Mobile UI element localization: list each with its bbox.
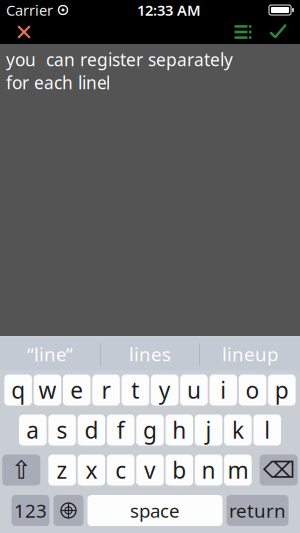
button[interactable]: lines bbox=[101, 338, 199, 370]
staticText: space bbox=[130, 498, 180, 523]
button[interactable]: t bbox=[122, 374, 149, 405]
button[interactable]: k bbox=[224, 414, 252, 445]
staticText: i bbox=[220, 375, 226, 405]
button[interactable]: o bbox=[239, 374, 266, 405]
staticText: 123 bbox=[14, 498, 47, 523]
button[interactable]: return bbox=[226, 495, 288, 526]
staticText: u bbox=[187, 375, 201, 405]
button[interactable]: Done bbox=[260, 20, 296, 44]
button[interactable]: i bbox=[209, 374, 237, 405]
button[interactable]: f bbox=[107, 414, 134, 445]
staticText: y bbox=[159, 375, 171, 405]
button[interactable]: l bbox=[253, 414, 281, 445]
staticText: ⌫ bbox=[263, 457, 295, 483]
button[interactable]: 123 bbox=[11, 495, 49, 526]
staticText: lineup bbox=[222, 342, 278, 366]
button[interactable]: j bbox=[195, 414, 222, 445]
button[interactable]: m bbox=[224, 454, 252, 485]
button[interactable]: v bbox=[136, 454, 164, 485]
staticText: c bbox=[115, 455, 126, 485]
button[interactable]: g bbox=[136, 414, 164, 445]
button[interactable]: Next keyboard bbox=[53, 495, 83, 526]
button[interactable]: w bbox=[34, 374, 61, 405]
button[interactable]: c bbox=[107, 454, 134, 485]
button[interactable]: e bbox=[63, 374, 90, 405]
button[interactable]: z bbox=[48, 454, 76, 485]
staticText: b bbox=[172, 455, 186, 485]
staticText: q bbox=[11, 375, 25, 405]
button[interactable]: “line” bbox=[0, 338, 100, 370]
staticText: 12:33 AM bbox=[137, 0, 201, 20]
staticText: n bbox=[202, 455, 216, 485]
staticText: ⇧ bbox=[11, 456, 32, 484]
button[interactable]: s bbox=[48, 414, 76, 445]
button[interactable]: u bbox=[180, 374, 208, 405]
button[interactable]: x bbox=[78, 454, 105, 485]
staticText: w bbox=[38, 375, 56, 405]
staticText: “line” bbox=[27, 342, 73, 366]
staticText: v bbox=[144, 455, 156, 485]
button[interactable]: Shift bbox=[2, 454, 40, 485]
staticText: lines bbox=[129, 342, 171, 366]
staticText: Carrier bbox=[6, 0, 53, 20]
staticText: d bbox=[84, 415, 98, 445]
button[interactable]: d bbox=[78, 414, 105, 445]
staticText: j bbox=[206, 415, 212, 445]
button[interactable]: p bbox=[268, 374, 296, 405]
button[interactable]: r bbox=[92, 374, 120, 405]
staticText: for each line bbox=[6, 71, 107, 94]
staticText: o bbox=[246, 375, 260, 405]
staticText: h bbox=[172, 415, 186, 445]
button[interactable]: b bbox=[166, 454, 193, 485]
staticText: g bbox=[143, 415, 157, 445]
button[interactable]: List options bbox=[226, 20, 260, 44]
staticText: l bbox=[264, 415, 270, 445]
staticText: k bbox=[232, 415, 244, 445]
staticText: m bbox=[227, 455, 248, 485]
staticText: you can register separately bbox=[6, 48, 233, 71]
staticText: t bbox=[131, 375, 139, 405]
staticText: e bbox=[70, 375, 83, 405]
button[interactable]: n bbox=[195, 454, 222, 485]
staticText: r bbox=[102, 375, 111, 405]
button[interactable]: a bbox=[19, 414, 47, 445]
staticText: s bbox=[57, 415, 68, 445]
button[interactable]: Delete bbox=[260, 454, 298, 485]
button[interactable]: q bbox=[4, 374, 32, 405]
button[interactable]: y bbox=[151, 374, 178, 405]
staticText: f bbox=[117, 415, 125, 445]
button[interactable]: space bbox=[87, 495, 222, 526]
button[interactable]: lineup bbox=[200, 338, 300, 370]
staticText: x bbox=[85, 455, 97, 485]
button[interactable]: Cancel bbox=[4, 20, 44, 44]
staticText: return bbox=[229, 498, 286, 523]
staticText: a bbox=[26, 415, 39, 445]
staticText: p bbox=[275, 375, 289, 405]
button[interactable]: h bbox=[166, 414, 193, 445]
staticText: z bbox=[57, 455, 68, 485]
